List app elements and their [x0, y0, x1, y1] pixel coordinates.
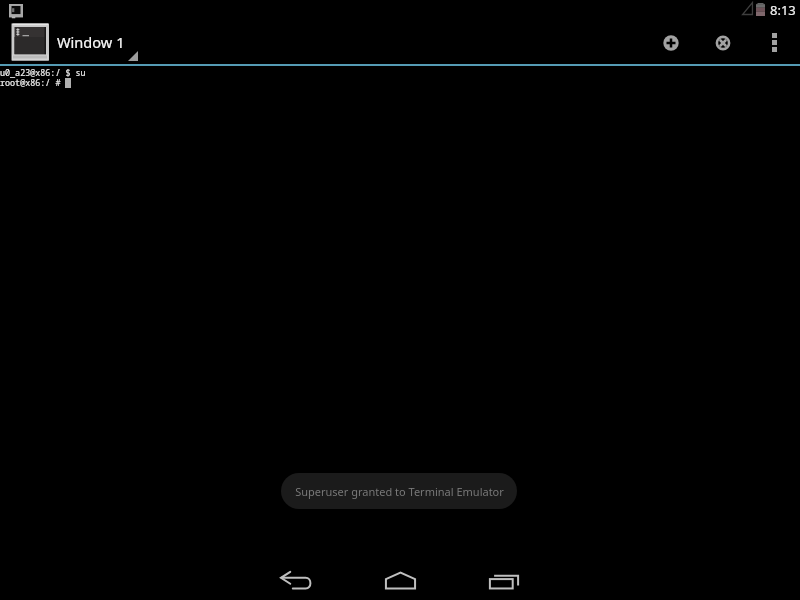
staticText: Window 1 — [57, 32, 125, 52]
staticText: 8:13 — [770, 1, 796, 19]
staticText: Superuser granted to Terminal Emulator — [295, 484, 504, 499]
button[interactable]: Window 1 — [10, 19, 142, 64]
staticText: u0_a23@x86:/ $ su — [0, 67, 86, 78]
button[interactable]: Recent apps — [461, 556, 547, 600]
staticText: root@x86:/ # — [0, 77, 66, 88]
button[interactable]: Close window — [700, 19, 745, 64]
button[interactable]: Back — [253, 556, 339, 600]
button[interactable]: More options — [754, 19, 794, 64]
button[interactable]: Home — [357, 556, 443, 600]
button[interactable]: Terminal screen — [0, 66, 800, 552]
button[interactable]: New window — [648, 19, 693, 64]
